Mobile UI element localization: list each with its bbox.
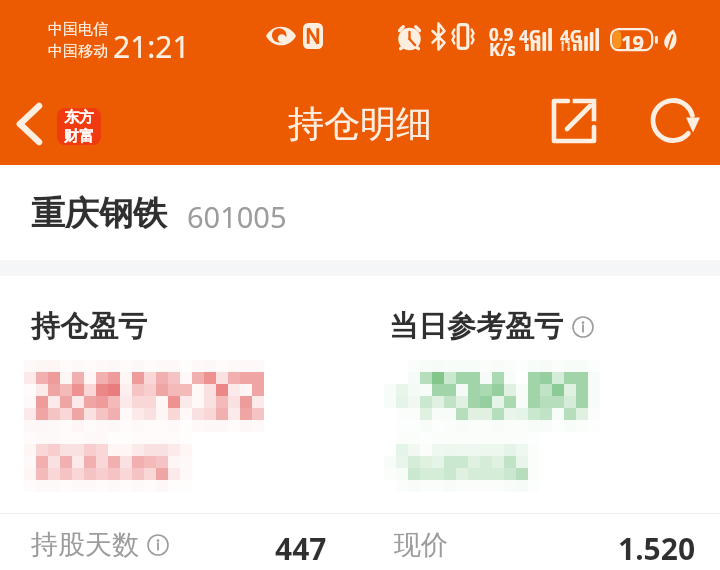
- staticText: 东方: [64, 108, 94, 127]
- staticText: 持股天数: [31, 528, 139, 562]
- button[interactable]: Refresh: [645, 85, 709, 157]
- staticText: 1.520: [618, 528, 696, 569]
- button[interactable]: Back: [2, 94, 58, 154]
- button[interactable]: Share: [538, 85, 608, 157]
- staticText: 19: [621, 29, 644, 56]
- button[interactable]: Info: [572, 316, 594, 338]
- staticText: 现价: [394, 528, 448, 562]
- staticText: 中国移动: [48, 42, 108, 61]
- staticText: 4G: [560, 25, 583, 48]
- staticText: 财富: [64, 127, 94, 145]
- staticText: 21:21: [113, 26, 190, 67]
- staticText: 中国电信: [48, 20, 108, 39]
- staticText: 当日参考盈亏: [389, 308, 563, 345]
- button[interactable]: Info: [147, 534, 169, 556]
- staticText: 重庆钢铁: [31, 192, 167, 235]
- staticText: 持仓盈亏: [31, 308, 147, 345]
- staticText: K/s: [489, 38, 516, 61]
- staticText: 4G: [519, 25, 542, 48]
- staticText: 持仓明细: [288, 101, 432, 146]
- staticText: 601005: [187, 197, 287, 236]
- staticText: 0.9: [489, 23, 514, 46]
- button[interactable]: 东方: [57, 108, 101, 145]
- staticText: 447: [275, 528, 327, 569]
